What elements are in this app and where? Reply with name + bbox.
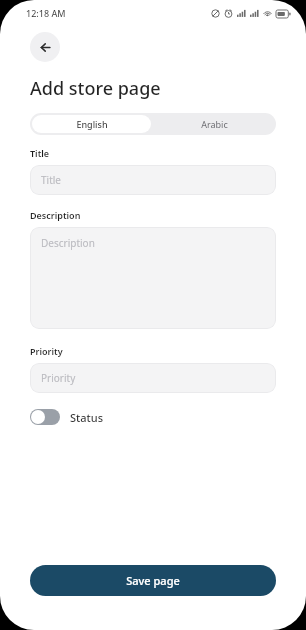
button[interactable]: Priority [30,363,276,393]
button[interactable]: Status [30,409,104,425]
staticText: Save page [126,573,180,588]
staticText: Description [30,209,81,221]
staticText: Title [30,147,50,159]
staticText: Priority [30,345,63,357]
staticText: Priority [41,371,76,385]
staticText: Status [70,410,104,425]
staticText: Add store page [30,76,161,101]
staticText: Title [41,173,61,187]
button[interactable]: Save page [30,565,276,596]
staticText: English [76,118,108,130]
button[interactable]: Back [30,32,60,62]
button[interactable]: English [32,115,151,133]
staticText: 12:18 AM [26,7,66,19]
staticText: Description [41,236,95,250]
button[interactable]: Title [30,165,276,195]
button[interactable]: Description [30,227,276,329]
staticText: Arabic [201,118,228,130]
button[interactable]: Arabic [153,113,276,135]
